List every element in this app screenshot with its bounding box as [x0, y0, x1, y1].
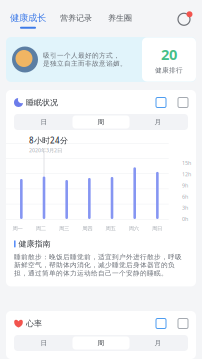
- staticText: 睡前散步：晚饭后睡觉前，适宜到户外进行散步，呼吸新鲜空气，帮助体内消化，减少睡觉…: [14, 253, 182, 277]
- button[interactable]: 月: [129, 336, 186, 349]
- button[interactable]: Edit: [156, 318, 166, 328]
- button[interactable]: 日: [15, 336, 72, 349]
- staticText: 日: [40, 339, 47, 347]
- staticText: 心率: [26, 319, 42, 328]
- staticText: 周一: [13, 225, 23, 232]
- button[interactable]: Delete: [166, 318, 188, 328]
- staticText: 吸引一个人最好的方式， 是独立自主而非故意谄媚。: [43, 51, 127, 68]
- button[interactable]: Delete: [166, 97, 188, 107]
- staticText: 健康成长: [10, 12, 46, 24]
- staticText: 2020年3月2日: [29, 147, 62, 154]
- staticText: 0h: [182, 215, 188, 223]
- staticText: 周二: [36, 225, 46, 232]
- staticText: 周五: [106, 225, 116, 232]
- button[interactable]: Messages: [177, 4, 202, 26]
- staticText: 月: [154, 118, 161, 126]
- staticText: 12h: [182, 171, 191, 178]
- button[interactable]: 月: [129, 115, 186, 128]
- staticText: 养生圈: [108, 13, 132, 23]
- staticText: 周: [97, 118, 104, 126]
- staticText: 健康排行: [155, 66, 183, 74]
- button[interactable]: Edit: [156, 97, 166, 107]
- staticText: 周三: [59, 225, 69, 232]
- staticText: 周日: [152, 225, 162, 232]
- staticText: 周: [97, 339, 104, 347]
- staticText: 9h: [182, 182, 188, 189]
- button[interactable]: 周: [72, 115, 129, 128]
- button[interactable]: 养生圈: [100, 4, 140, 23]
- staticText: 15h: [182, 159, 191, 167]
- staticText: 3h: [182, 204, 188, 211]
- staticText: 周六: [129, 225, 139, 232]
- staticText: 日: [40, 118, 47, 126]
- staticText: 8小时24分: [29, 135, 68, 146]
- staticText: 月: [154, 339, 161, 347]
- staticText: 6h: [182, 193, 188, 200]
- button[interactable]: 周: [72, 336, 129, 349]
- button[interactable]: 营养记录: [52, 4, 100, 23]
- staticText: 睡眠状况: [26, 98, 58, 107]
- staticText: 健康指南: [19, 239, 51, 249]
- button[interactable]: 健康成长: [4, 4, 52, 29]
- staticText: 营养记录: [60, 13, 92, 23]
- staticText: 周四: [82, 225, 92, 232]
- staticText: 20: [161, 45, 177, 64]
- button[interactable]: 日: [15, 115, 72, 128]
